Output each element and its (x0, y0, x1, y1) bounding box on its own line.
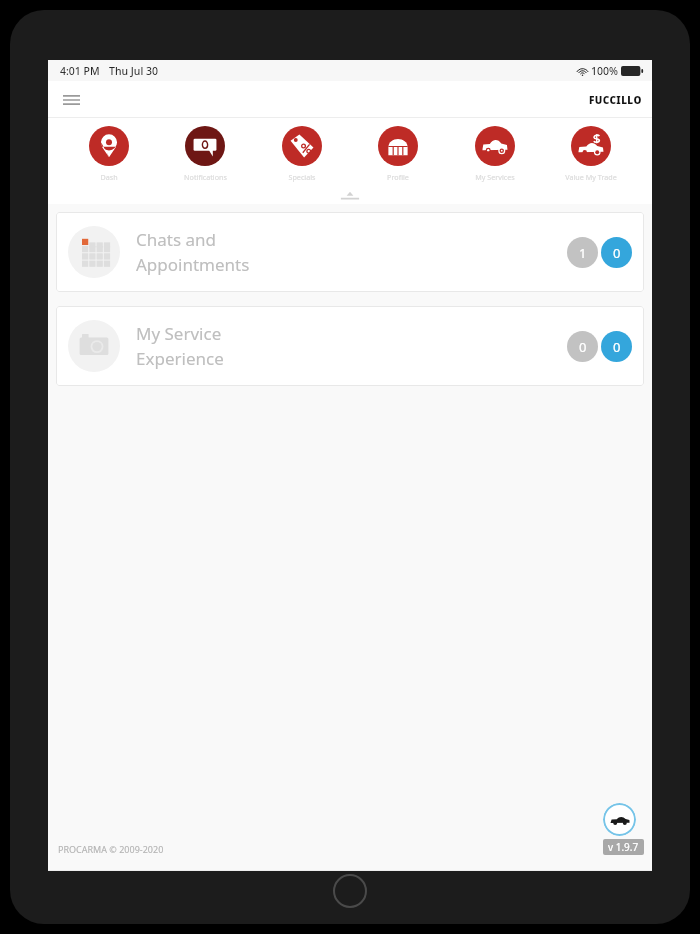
staticText: Specials (288, 172, 316, 182)
staticText: My Services (475, 172, 515, 182)
staticText: PROCARMA © 2009-2020 (58, 843, 164, 855)
button[interactable]: Profile (356, 126, 440, 182)
button[interactable]: Vehicle (603, 803, 636, 836)
button[interactable]: Chats and (56, 212, 644, 292)
staticText: 0 (579, 338, 587, 356)
staticText: 4:01 PM (60, 64, 100, 78)
button[interactable]: Notifications (163, 126, 247, 182)
button[interactable]: Collapse (330, 187, 370, 203)
staticText: 1 (579, 244, 587, 262)
staticText: Experience (136, 347, 224, 370)
button[interactable]: Menu (58, 87, 84, 113)
staticText: Dash (100, 172, 118, 182)
staticText: Appointments (136, 253, 250, 276)
button[interactable]: My Services (453, 126, 537, 182)
staticText: 0 (613, 338, 621, 356)
staticText: v 1.9.7 (608, 840, 639, 854)
button[interactable]: Dash (67, 126, 151, 182)
staticText: Value My Trade (565, 172, 617, 182)
staticText: Chats and (136, 228, 216, 251)
staticText: Profile (387, 172, 409, 182)
staticText: 100% (591, 64, 618, 78)
button[interactable]: Value My Trade (549, 126, 633, 182)
staticText: My Service (136, 322, 222, 345)
button[interactable]: Specials (260, 126, 344, 182)
staticText: Notifications (184, 172, 227, 182)
staticText: 0 (613, 244, 621, 262)
staticText: Thu Jul 30 (109, 64, 159, 78)
button[interactable]: My Service (56, 306, 644, 386)
button[interactable]: FUCCILLO (589, 93, 642, 107)
staticText: FUCCILLO (589, 93, 642, 107)
